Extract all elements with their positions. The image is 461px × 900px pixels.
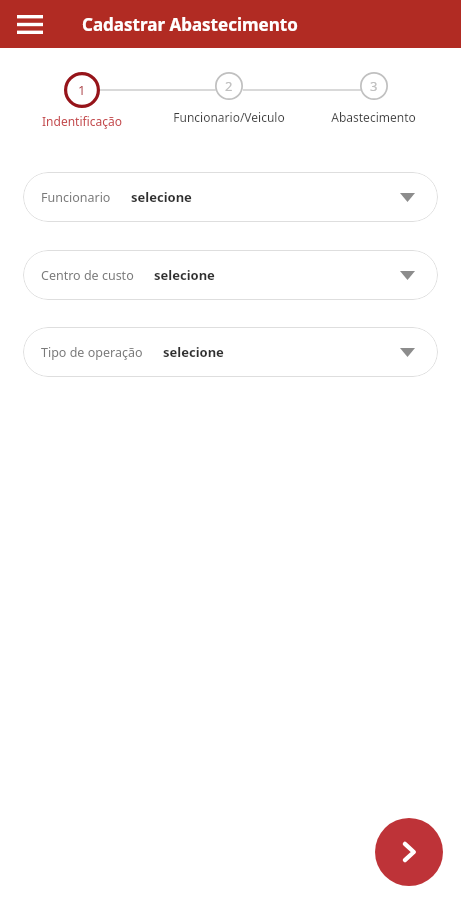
button[interactable]: Centro de custo bbox=[23, 250, 438, 300]
staticText: Funcionario bbox=[41, 189, 111, 206]
staticText: selecione bbox=[131, 188, 400, 206]
staticText: Abastecimento bbox=[331, 109, 416, 125]
staticText: Tipo de operação bbox=[41, 344, 143, 361]
staticText: 3 bbox=[370, 77, 378, 95]
staticText: Indentificação bbox=[42, 113, 122, 129]
button[interactable]: Tipo de operação bbox=[23, 327, 438, 377]
button[interactable]: Menu bbox=[8, 2, 52, 46]
button[interactable]: Funcionario bbox=[23, 172, 438, 222]
staticText: selecione bbox=[163, 343, 400, 361]
staticText: Centro de custo bbox=[41, 267, 134, 284]
button[interactable]: Próximo bbox=[375, 818, 443, 886]
staticText: Cadastrar Abastecimento bbox=[82, 13, 298, 36]
staticText: 2 bbox=[225, 77, 233, 95]
staticText: 1 bbox=[78, 81, 86, 99]
staticText: selecione bbox=[154, 266, 400, 284]
staticText: Funcionario/Veiculo bbox=[173, 109, 285, 125]
